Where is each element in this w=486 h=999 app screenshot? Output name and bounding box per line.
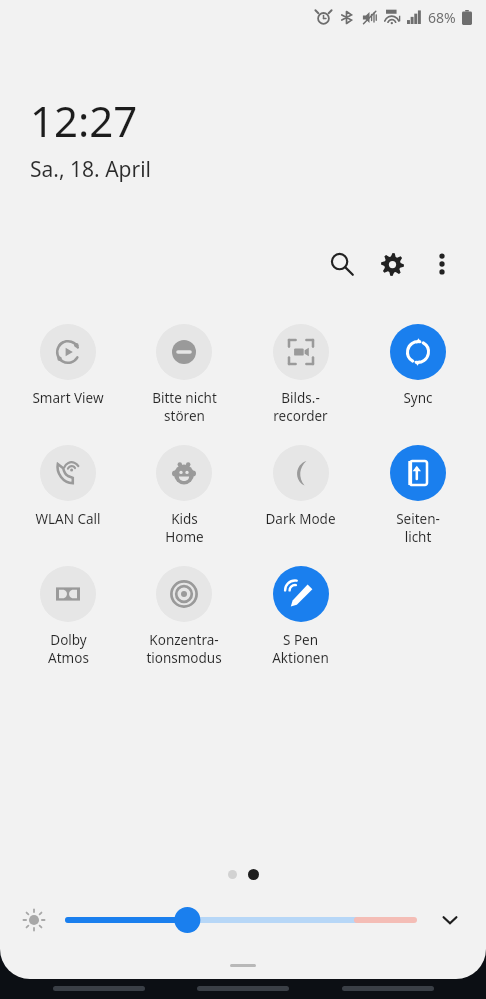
staticText: Sa., 18. April <box>30 155 151 184</box>
staticText: Bilds.- recorder <box>273 389 328 425</box>
staticText: Dolby Atmos <box>48 631 89 667</box>
staticText: Kids Home <box>165 510 204 546</box>
button[interactable]: Brightness <box>68 903 414 937</box>
button[interactable]: Kids Home <box>126 443 242 548</box>
staticText: Dark Mode <box>265 510 336 528</box>
staticText: WLAN Call <box>35 510 101 528</box>
button[interactable]: Search <box>320 242 364 286</box>
button[interactable]: Bitte nicht stören <box>126 322 242 427</box>
staticText: 12:27 <box>30 92 138 149</box>
button[interactable]: Dark Mode <box>242 443 359 530</box>
button[interactable]: Bilds.- recorder <box>242 322 359 427</box>
button[interactable]: Konzentra- tionsmodus <box>126 564 242 669</box>
button[interactable]: Seiten- licht <box>359 443 476 548</box>
button[interactable]: Dolby Atmos <box>10 564 126 669</box>
staticText: Bitte nicht stören <box>152 389 217 425</box>
staticText: Smart View <box>32 389 104 407</box>
button[interactable]: WLAN Call <box>10 443 126 530</box>
button[interactable]: Sync <box>359 322 476 409</box>
staticText: Sync <box>403 389 433 407</box>
staticText: 68% <box>428 8 456 27</box>
button[interactable]: Collapse panel <box>230 964 256 967</box>
staticText: S Pen Aktionen <box>272 631 329 667</box>
staticText: Konzentra- tionsmodus <box>146 631 222 667</box>
button[interactable]: More options <box>420 242 464 286</box>
button[interactable]: Smart View <box>10 322 126 409</box>
button[interactable]: Settings <box>370 242 414 286</box>
button[interactable]: S Pen Aktionen <box>242 564 359 669</box>
staticText: Seiten- licht <box>396 510 440 546</box>
button[interactable]: Expand brightness settings <box>430 900 470 940</box>
